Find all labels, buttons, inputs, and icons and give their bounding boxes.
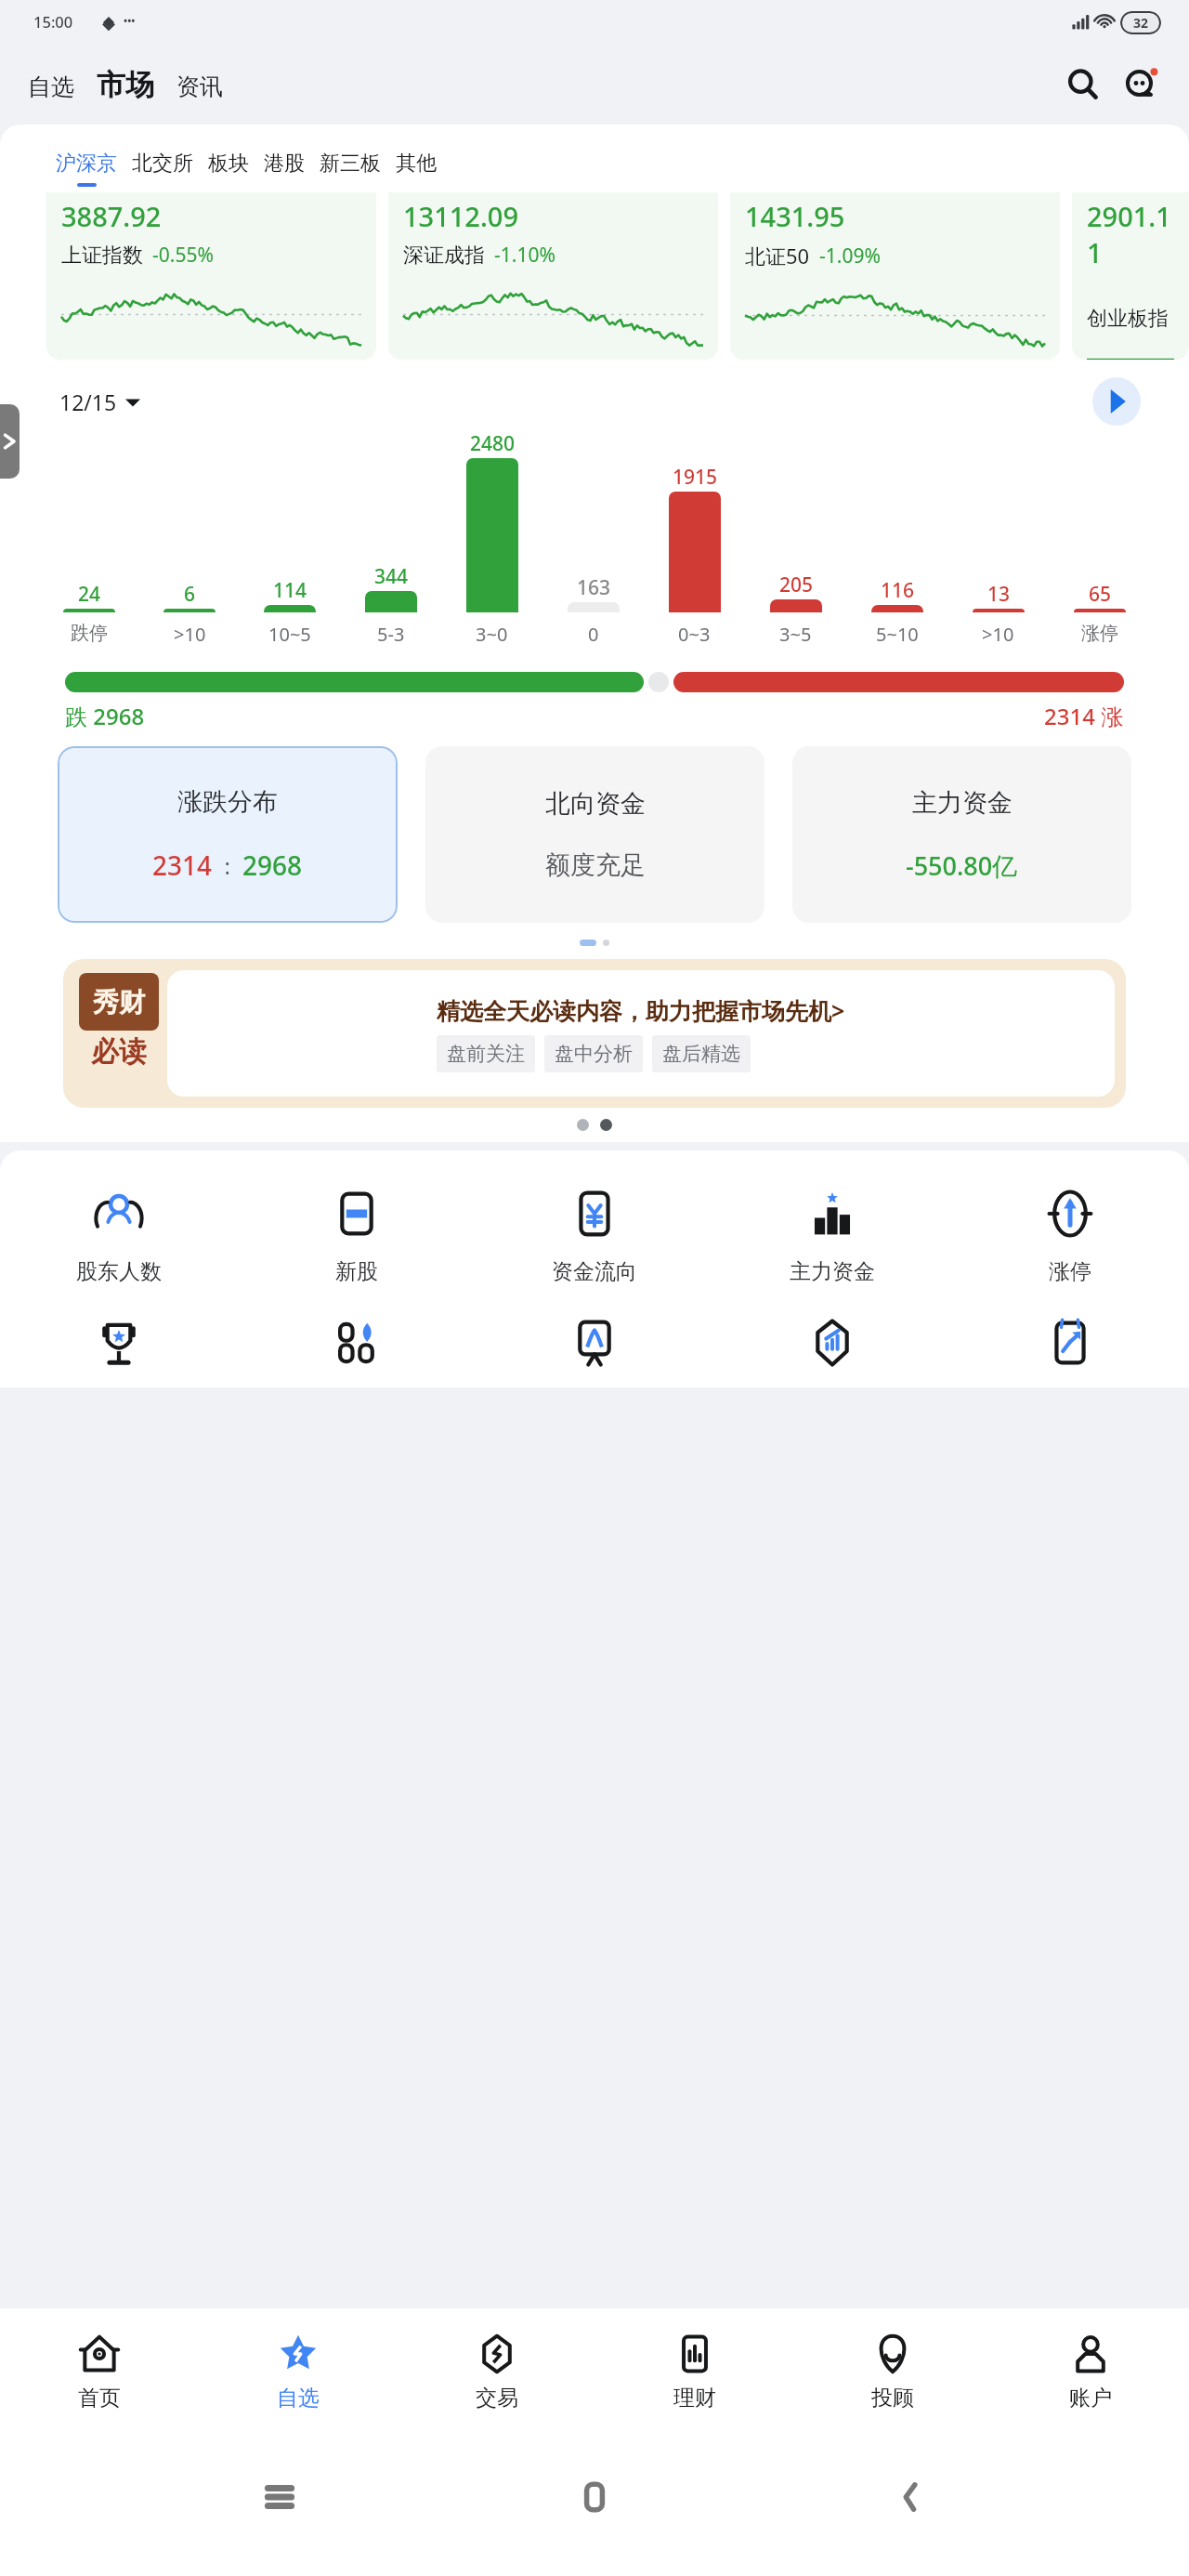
staticText: 涨停 bbox=[1049, 1258, 1091, 1285]
button[interactable]: 交易 bbox=[398, 2308, 595, 2435]
button[interactable]: Play bbox=[1092, 377, 1141, 426]
staticText: 交易 bbox=[476, 2385, 518, 2412]
staticText: 2968 bbox=[242, 848, 303, 883]
button[interactable]: 板块 bbox=[201, 151, 256, 183]
button[interactable]: 24 bbox=[39, 430, 139, 663]
staticText: 涨跌分布 bbox=[177, 786, 278, 818]
staticText: 116 bbox=[881, 577, 915, 604]
button[interactable]: 13112.09 bbox=[388, 192, 718, 360]
button[interactable]: 市场 bbox=[91, 65, 160, 105]
button[interactable]: 116 bbox=[846, 430, 947, 663]
staticText: ••• bbox=[124, 13, 136, 27]
staticText: -1.10% bbox=[494, 242, 555, 269]
staticText: : bbox=[213, 850, 242, 881]
staticText: 股东人数 bbox=[76, 1258, 162, 1285]
button[interactable]: 其他 bbox=[388, 151, 444, 183]
button[interactable]: 首页 bbox=[0, 2308, 199, 2435]
button[interactable]: 资金流向 bbox=[476, 1188, 713, 1285]
staticText: 主力资金 bbox=[790, 1258, 875, 1285]
button[interactable]: Messages bbox=[1115, 59, 1167, 111]
button[interactable]: 3887.92 bbox=[46, 192, 376, 360]
button[interactable]: Tool 3 bbox=[476, 1317, 713, 1369]
staticText: 13 bbox=[987, 581, 1011, 608]
button[interactable]: 344 bbox=[340, 430, 441, 663]
staticText: 15:00 bbox=[33, 11, 73, 32]
button[interactable]: Open drawer bbox=[0, 404, 20, 479]
button[interactable]: 沪深京 bbox=[48, 151, 124, 187]
staticText: -0.55% bbox=[152, 242, 214, 269]
staticText: 2901.11 bbox=[1087, 198, 1174, 270]
staticText: 账户 bbox=[1069, 2385, 1112, 2412]
button[interactable]: 163 bbox=[542, 430, 644, 663]
staticText: 上证指数 bbox=[61, 243, 143, 269]
button[interactable]: 114 bbox=[240, 430, 340, 663]
button[interactable]: 13 bbox=[947, 430, 1049, 663]
staticText: >10 bbox=[982, 622, 1014, 647]
button[interactable]: 主力资金 bbox=[792, 746, 1131, 923]
staticText: 资讯 bbox=[176, 72, 223, 101]
staticText: -1.09% bbox=[819, 243, 881, 269]
button[interactable]: 新股 bbox=[238, 1188, 476, 1285]
button[interactable]: 涨跌分布 bbox=[58, 746, 398, 923]
button[interactable]: Search bbox=[1057, 59, 1109, 111]
staticText: >10 bbox=[174, 622, 206, 647]
button[interactable]: 港股 bbox=[256, 151, 312, 183]
button[interactable]: 1915 bbox=[644, 430, 745, 663]
button[interactable]: 自选 bbox=[22, 69, 80, 105]
button[interactable]: Tool 4 bbox=[713, 1317, 951, 1369]
staticText: 北证50 bbox=[745, 242, 810, 269]
button[interactable]: Back bbox=[874, 2461, 947, 2533]
staticText: 12/15 bbox=[59, 388, 117, 416]
staticText: 北交所 bbox=[132, 151, 193, 177]
button[interactable]: Recents bbox=[243, 2461, 316, 2533]
staticText: 65 bbox=[1089, 581, 1112, 608]
staticText: 新三板 bbox=[320, 151, 381, 177]
staticText: 盘中分析 bbox=[555, 1042, 633, 1066]
staticText: 5-3 bbox=[377, 622, 405, 647]
button[interactable]: 自选 bbox=[199, 2308, 398, 2435]
button[interactable]: 资讯 bbox=[171, 69, 229, 105]
button[interactable]: 北向资金 bbox=[425, 746, 764, 923]
button[interactable]: Tool 1 bbox=[0, 1317, 238, 1369]
button[interactable]: 主力资金 bbox=[713, 1188, 951, 1285]
button[interactable]: 股东人数 bbox=[0, 1188, 238, 1285]
button[interactable]: 2480 bbox=[441, 430, 542, 663]
staticText: 0 bbox=[588, 622, 599, 647]
button[interactable]: 盘后精选 bbox=[652, 1035, 751, 1072]
button[interactable]: 12/15 bbox=[56, 384, 144, 420]
button[interactable]: 盘前关注 bbox=[437, 1035, 535, 1072]
staticText: 必读 bbox=[91, 1034, 147, 1070]
button[interactable]: 2901.11 bbox=[1072, 192, 1189, 360]
button[interactable]: 205 bbox=[745, 430, 846, 663]
button[interactable]: 秀财 bbox=[63, 959, 1126, 1108]
staticText: 沪深京 bbox=[56, 151, 117, 177]
staticText: 344 bbox=[374, 563, 409, 590]
staticText: 114 bbox=[273, 577, 307, 604]
staticText: 市场 bbox=[97, 67, 154, 103]
staticText: 资金流向 bbox=[552, 1258, 637, 1285]
button[interactable]: Tool 5 bbox=[951, 1317, 1189, 1369]
button[interactable]: 理财 bbox=[595, 2308, 793, 2435]
staticText: 涨停 bbox=[1081, 622, 1118, 645]
button[interactable]: 账户 bbox=[991, 2308, 1189, 2435]
staticText: 自选 bbox=[277, 2385, 320, 2412]
button[interactable]: 涨停 bbox=[951, 1188, 1189, 1285]
button[interactable]: Tool 2 bbox=[238, 1317, 476, 1369]
button[interactable]: 盘中分析 bbox=[544, 1035, 643, 1072]
staticText: 盘前关注 bbox=[447, 1042, 525, 1066]
staticText: 板块 bbox=[208, 151, 249, 177]
button[interactable]: 投顾 bbox=[793, 2308, 991, 2435]
button[interactable]: 6 bbox=[139, 430, 240, 663]
staticText: 3887.92 bbox=[61, 198, 162, 234]
staticText: 163 bbox=[577, 574, 611, 601]
staticText: 首页 bbox=[78, 2385, 121, 2412]
button[interactable]: 新三板 bbox=[312, 151, 388, 183]
staticText: 10~5 bbox=[268, 622, 311, 647]
staticText: -550.80亿 bbox=[906, 848, 1018, 883]
staticText: 1431.95 bbox=[745, 198, 845, 234]
staticText: 跌停 bbox=[71, 622, 108, 645]
button[interactable]: Home bbox=[558, 2461, 631, 2533]
button[interactable]: 1431.95 bbox=[730, 192, 1060, 360]
button[interactable]: 65 bbox=[1049, 430, 1150, 663]
button[interactable]: 北交所 bbox=[124, 151, 201, 183]
